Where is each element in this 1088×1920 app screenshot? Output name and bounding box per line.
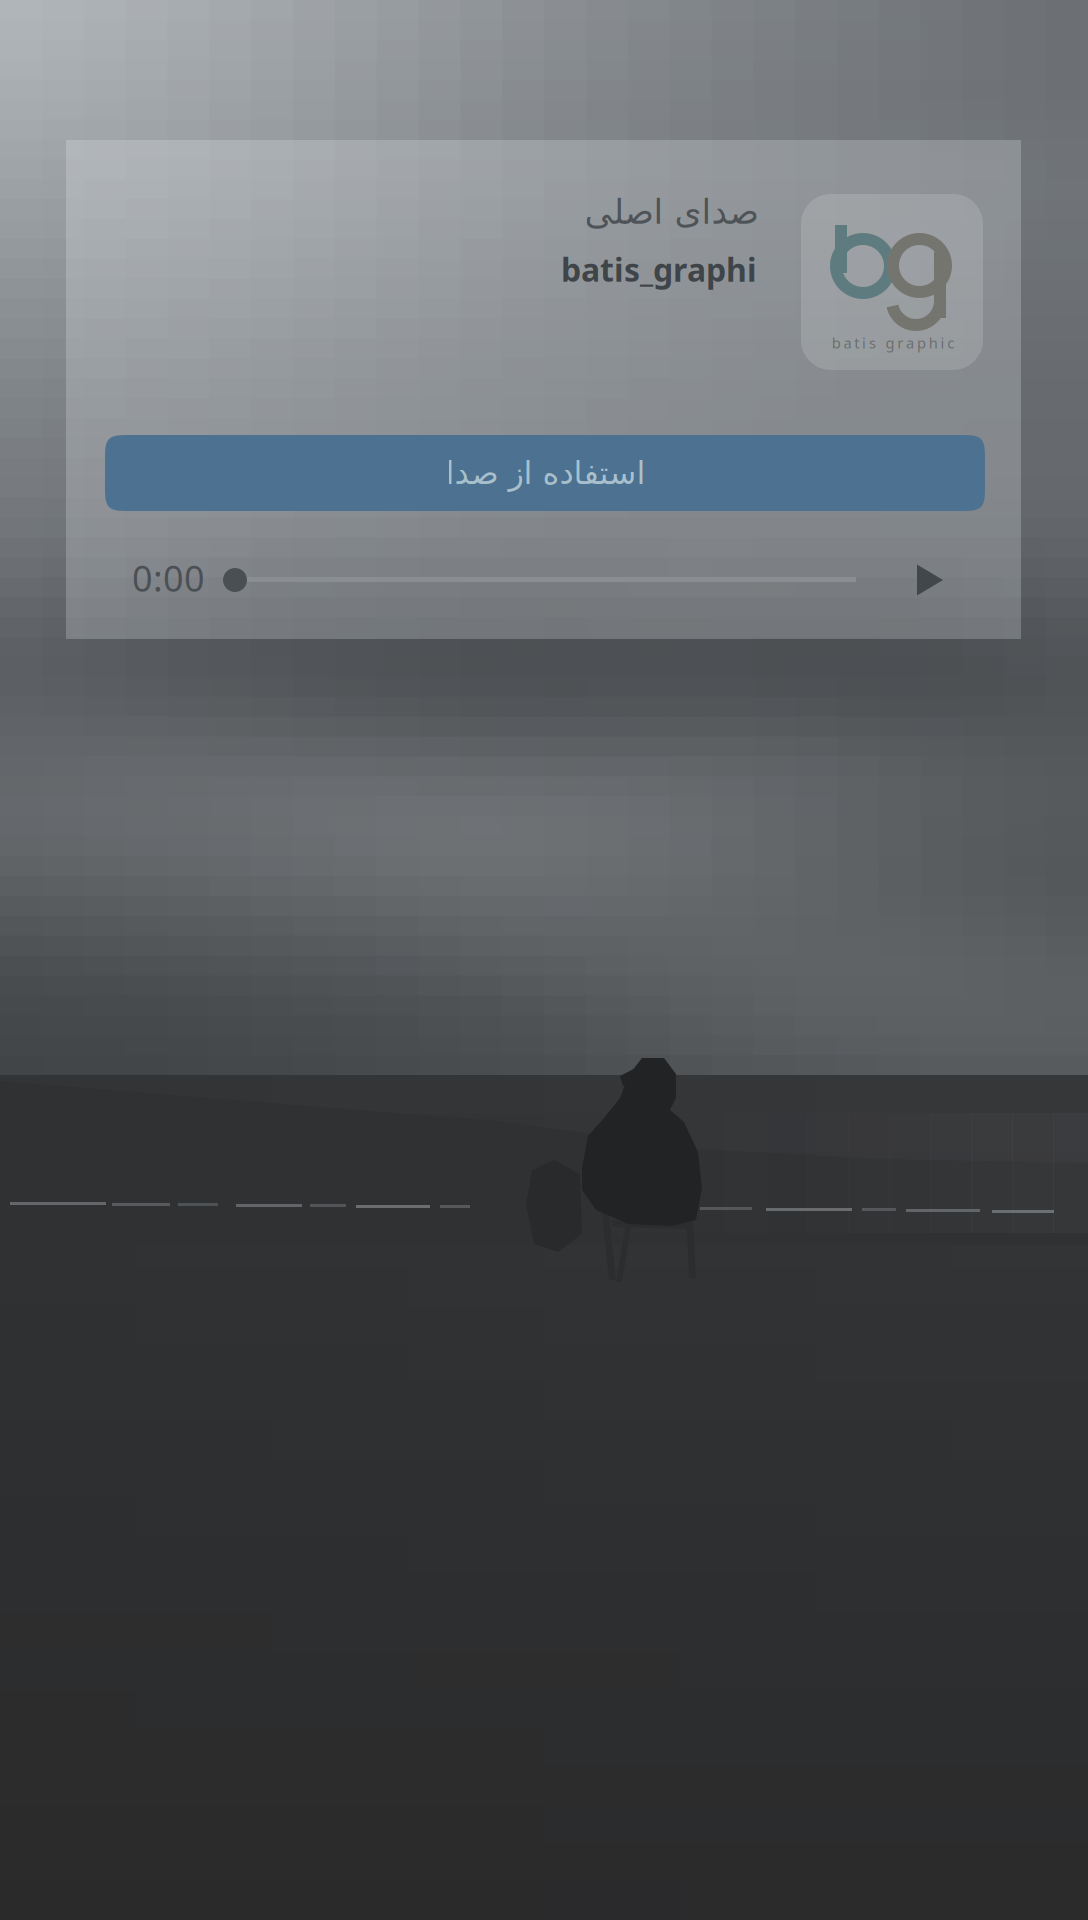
staticText: batis_graphi [561,248,757,290]
staticText: batis graphic [832,333,954,352]
button[interactable]: استفاده از صدا [105,435,985,511]
staticText: استفاده از صدا [445,455,645,491]
button[interactable]: Play [917,564,943,596]
staticText: 0:00 [132,554,205,602]
staticText: صدای اصلی [584,192,758,231]
